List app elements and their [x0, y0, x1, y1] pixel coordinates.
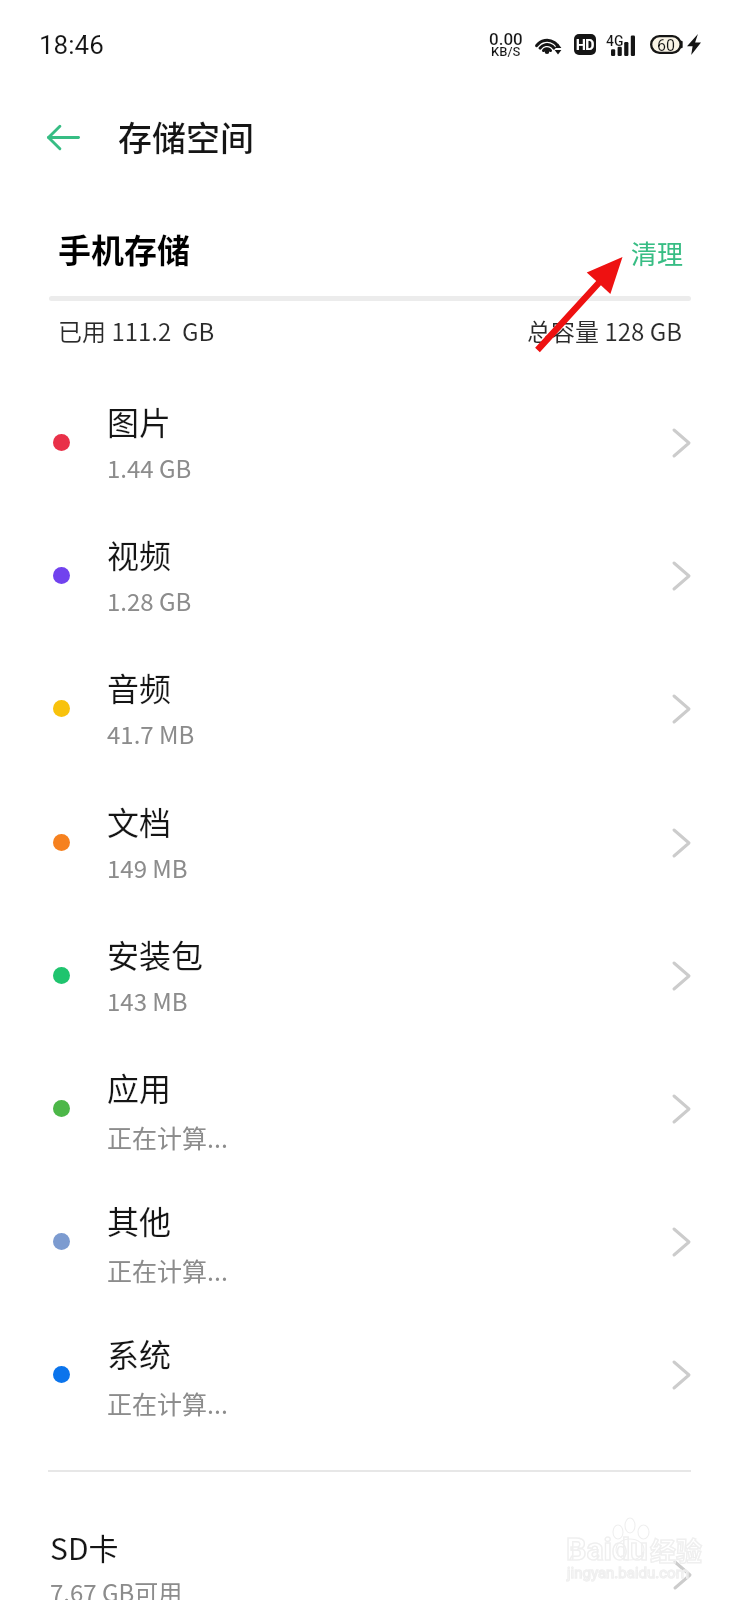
staticText: 图片: [107, 398, 172, 444]
staticText: 正在计算...: [107, 1119, 228, 1155]
button[interactable]: 清理: [631, 234, 684, 272]
staticText: 存储空间: [118, 112, 254, 161]
staticText: 正在计算...: [107, 1252, 228, 1288]
button[interactable]: 其他: [0, 1175, 738, 1308]
button[interactable]: 音频: [0, 642, 738, 775]
staticText: 总容量 128 GB: [527, 313, 683, 348]
staticText: 149 MB: [107, 850, 188, 885]
staticText: 60: [657, 36, 675, 55]
staticText: KB/S: [491, 44, 521, 59]
staticText: 应用: [107, 1064, 172, 1110]
staticText: 手机存储: [58, 225, 190, 273]
staticText: 经验: [650, 1531, 703, 1569]
staticText: 视频: [107, 531, 172, 577]
staticText: 已用 111.2 GB: [58, 313, 215, 348]
staticText: 安装包: [107, 931, 204, 977]
staticText: 41.7 MB: [107, 716, 195, 751]
staticText: 1.28 GB: [107, 583, 192, 618]
staticText: SD卡: [50, 1525, 119, 1568]
staticText: 系统: [107, 1330, 172, 1376]
staticText: 文档: [107, 798, 172, 844]
staticText: HD: [576, 37, 594, 53]
button[interactable]: 视频: [0, 509, 738, 642]
button[interactable]: 图片: [0, 376, 738, 509]
staticText: 4G: [606, 33, 624, 49]
button[interactable]: 文档: [0, 776, 738, 909]
button[interactable]: 安装包: [0, 909, 738, 1042]
staticText: 音频: [107, 664, 172, 710]
staticText: Baidu: [566, 1530, 648, 1568]
staticText: 其他: [107, 1197, 172, 1243]
staticText: 1.44 GB: [107, 450, 192, 485]
staticText: 7.67 GB可用: [50, 1574, 183, 1600]
button[interactable]: 系统: [0, 1308, 738, 1441]
staticText: 正在计算...: [107, 1385, 228, 1421]
button[interactable]: SD卡: [0, 1505, 738, 1600]
button[interactable]: 应用: [0, 1042, 738, 1175]
staticText: 18:46: [39, 30, 104, 60]
staticText: 清理: [631, 234, 684, 272]
staticText: jingyan.baidu.com: [567, 1564, 689, 1582]
staticText: 143 MB: [107, 983, 188, 1018]
button[interactable]: Back: [34, 108, 93, 167]
staticText: 0.00: [489, 29, 523, 49]
